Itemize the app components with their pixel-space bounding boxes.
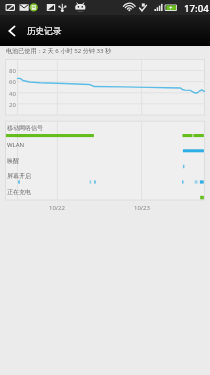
button[interactable]: WLAN (7, 141, 25, 149)
staticText: 移动网络信号 (7, 124, 43, 132)
staticText: 历史记录 (27, 26, 62, 37)
staticText: 屏幕开启 (7, 172, 31, 180)
button[interactable]: 屏幕开启 (7, 172, 31, 180)
staticText: WLAN (7, 141, 25, 149)
staticText: 10/22 (49, 204, 65, 212)
staticText: 17:04 (184, 2, 209, 15)
staticText: 10/23 (134, 204, 150, 212)
button[interactable]: 唤醒 (7, 157, 19, 165)
staticText: 80 (9, 67, 16, 75)
staticText: 20 (9, 101, 16, 109)
staticText: 60 (9, 78, 16, 86)
staticText: 电池已使用：2 天 6 小时 52 分钟 33 秒 (6, 46, 112, 54)
button[interactable]: 正在充电 (7, 188, 31, 196)
staticText: 正在充电 (7, 188, 31, 196)
staticText: 唤醒 (7, 157, 19, 165)
staticText: 40 (9, 90, 16, 98)
button[interactable]: 移动网络信号 (7, 124, 43, 132)
button[interactable]: Back (0, 19, 24, 43)
